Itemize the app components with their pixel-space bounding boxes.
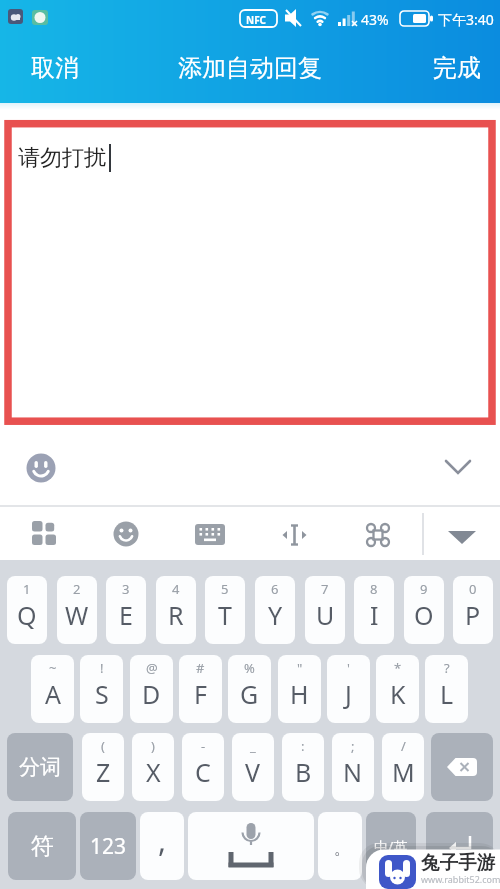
staticText: 请勿打扰 <box>18 144 106 172</box>
staticText: NFC <box>246 13 267 27</box>
staticText: R <box>168 598 184 632</box>
button[interactable] <box>445 524 479 550</box>
button[interactable]: ' <box>327 655 370 723</box>
staticText: ! <box>100 659 104 677</box>
button[interactable]: ~ <box>31 655 74 723</box>
staticText: I <box>370 598 379 632</box>
button[interactable] <box>188 812 314 880</box>
button[interactable]: ; <box>332 733 374 801</box>
staticText: ; <box>351 737 355 755</box>
button[interactable]: _ <box>232 733 274 801</box>
button[interactable] <box>195 524 226 546</box>
button[interactable]: 中/英 <box>366 812 416 880</box>
button[interactable]: 分词 <box>7 733 73 801</box>
staticText: , <box>158 820 167 861</box>
staticText: X <box>146 755 161 789</box>
button[interactable]: 6 <box>255 576 295 644</box>
staticText: K <box>390 677 406 711</box>
button[interactable]: - <box>182 733 224 801</box>
staticText: % <box>244 659 255 677</box>
staticText: _ <box>250 737 256 755</box>
button[interactable]: / <box>382 733 424 801</box>
button[interactable]: 取消 <box>18 50 98 90</box>
staticText: 兔子手游 <box>421 851 495 874</box>
staticText: 6 <box>271 580 279 598</box>
button[interactable]: 请勿打扰 <box>0 103 500 425</box>
staticText: C <box>195 755 211 789</box>
staticText: / <box>401 737 406 755</box>
button[interactable]: @ <box>130 655 173 723</box>
staticText: T <box>218 598 232 632</box>
staticText: ~ <box>49 659 57 677</box>
staticText: www.rabbit52.com <box>421 873 500 885</box>
staticText: Q <box>17 598 37 632</box>
staticText: 分词 <box>19 754 61 780</box>
staticText: 43% <box>361 10 389 29</box>
button[interactable]: 1 <box>7 576 47 644</box>
staticText: 添加自动回复 <box>0 53 500 83</box>
staticText: V <box>245 755 261 789</box>
staticText: 符 <box>31 832 54 861</box>
staticText: 。 <box>334 838 351 859</box>
staticText: @ <box>146 659 158 677</box>
button[interactable]: ( <box>82 733 124 801</box>
button[interactable]: , <box>140 812 184 880</box>
button[interactable]: ? <box>425 655 468 723</box>
staticText: G <box>240 677 259 711</box>
staticText: - <box>201 737 206 755</box>
button[interactable] <box>30 519 58 547</box>
staticText: 7 <box>321 580 329 598</box>
button[interactable] <box>426 812 493 880</box>
button[interactable] <box>24 451 58 485</box>
button[interactable]: ) <box>132 733 174 801</box>
button[interactable]: 9 <box>404 576 444 644</box>
staticText: S <box>95 677 109 711</box>
staticText: 5 <box>221 580 229 598</box>
button[interactable]: % <box>228 655 271 723</box>
staticText: Y <box>268 598 283 632</box>
button[interactable]: 2 <box>57 576 97 644</box>
button[interactable] <box>112 520 140 548</box>
staticText: M <box>392 755 415 789</box>
button[interactable]: * <box>376 655 419 723</box>
button[interactable]: 123 <box>80 812 136 880</box>
staticText: 0 <box>469 580 477 598</box>
staticText: * <box>394 659 402 677</box>
staticText: N <box>343 755 363 789</box>
staticText: ' <box>347 659 350 677</box>
button[interactable]: 。 <box>318 812 362 880</box>
button[interactable]: 8 <box>354 576 394 644</box>
staticText: A <box>45 677 61 711</box>
staticText: # <box>196 659 205 677</box>
button[interactable]: : <box>282 733 324 801</box>
button[interactable]: " <box>278 655 321 723</box>
button[interactable] <box>436 450 480 486</box>
staticText: Z <box>96 755 111 789</box>
button[interactable]: # <box>179 655 222 723</box>
button[interactable]: ! <box>80 655 123 723</box>
staticText: 4 <box>172 580 180 598</box>
staticText: ) <box>151 737 155 755</box>
staticText: 2 <box>73 580 81 598</box>
button[interactable]: 5 <box>205 576 245 644</box>
button[interactable]: 3 <box>106 576 146 644</box>
button[interactable] <box>280 524 309 546</box>
staticText: 3 <box>122 580 130 598</box>
button[interactable]: 符 <box>8 812 76 880</box>
staticText: 下午3:40 <box>438 10 494 29</box>
staticText: 9 <box>420 580 428 598</box>
staticText: " <box>297 659 303 677</box>
button[interactable]: 完成 <box>420 50 495 90</box>
staticText: ( <box>101 737 105 755</box>
staticText: P <box>465 598 481 632</box>
staticText: 8 <box>370 580 378 598</box>
button[interactable] <box>431 733 493 801</box>
button[interactable]: 4 <box>156 576 196 644</box>
button[interactable]: 0 <box>453 576 493 644</box>
button[interactable] <box>365 522 391 548</box>
staticText: O <box>414 598 434 632</box>
button[interactable]: 7 <box>305 576 345 644</box>
staticText: 中/英 <box>374 837 408 856</box>
staticText: U <box>316 598 335 632</box>
staticText: D <box>142 677 161 711</box>
